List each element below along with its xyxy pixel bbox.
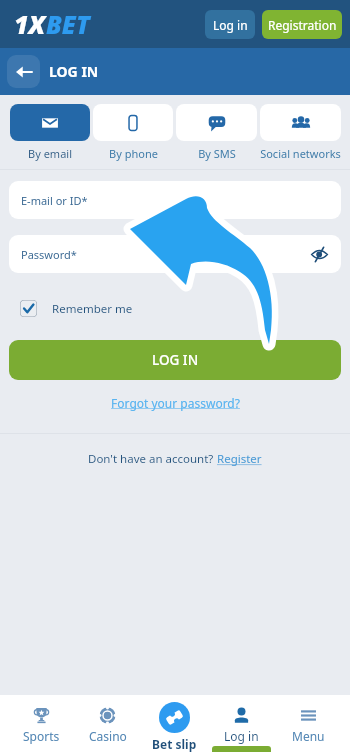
staticText: Remember me: [52, 301, 133, 317]
button[interactable]: Log in: [208, 695, 275, 752]
staticText: Casino: [89, 728, 127, 744]
staticText: BET: [46, 7, 90, 41]
staticText: By phone: [109, 146, 158, 161]
button[interactable]: By email: [10, 104, 90, 161]
button[interactable]: By SMS: [176, 104, 257, 161]
staticText: LOG IN: [49, 62, 99, 81]
button[interactable]: Sports: [8, 695, 74, 752]
button[interactable]: Register: [217, 451, 262, 467]
staticText: 1X: [14, 7, 46, 41]
button[interactable]: Back: [7, 55, 40, 88]
button[interactable]: LOG IN: [9, 340, 341, 380]
button[interactable]: Show password: [307, 242, 331, 266]
staticText: By email: [28, 146, 72, 161]
button[interactable]: By phone: [93, 104, 173, 161]
button[interactable]: Social networks: [260, 104, 341, 161]
staticText: Don't have an account?: [88, 451, 217, 467]
staticText: E-mail or ID*: [21, 193, 88, 208]
staticText: Password*: [21, 247, 77, 262]
button[interactable]: Password*: [9, 235, 341, 273]
button[interactable]: Registration: [262, 10, 342, 39]
button[interactable]: Bet slip: [141, 695, 208, 752]
staticText: Log in: [224, 728, 259, 744]
staticText: Menu: [292, 728, 325, 744]
staticText: By SMS: [198, 146, 236, 161]
staticText: Bet slip: [152, 736, 197, 752]
button[interactable]: Casino: [74, 695, 141, 752]
button[interactable]: Remember me: [9, 300, 350, 317]
button[interactable]: Forgot your password?: [107, 391, 244, 415]
staticText: LOG IN: [152, 351, 199, 369]
button[interactable]: Menu: [275, 695, 342, 752]
staticText: Sports: [23, 728, 60, 744]
staticText: Social networks: [260, 146, 341, 161]
button[interactable]: E-mail or ID*: [9, 181, 341, 219]
staticText: Registration: [268, 17, 337, 33]
button[interactable]: Log in: [205, 10, 255, 39]
staticText: Log in: [213, 17, 248, 33]
